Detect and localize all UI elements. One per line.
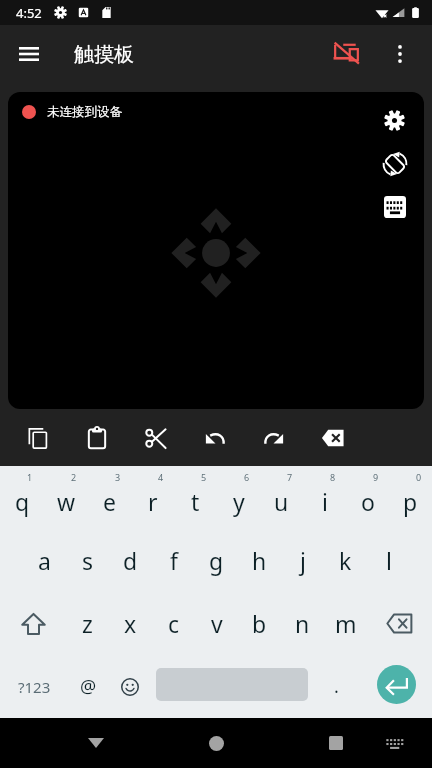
staticText: z — [82, 608, 93, 639]
button[interactable]: Cut — [126, 409, 185, 466]
staticText: c — [168, 608, 180, 639]
button[interactable]: Space — [152, 655, 312, 718]
button[interactable]: 3 — [88, 466, 131, 529]
button[interactable]: Show keyboard — [373, 185, 416, 228]
button[interactable]: n — [281, 592, 324, 655]
staticText: 9 — [373, 471, 379, 483]
staticText: 3 — [115, 471, 121, 483]
staticText: 1 — [27, 471, 33, 483]
button[interactable]: @ — [68, 655, 108, 718]
staticText: a — [38, 545, 51, 576]
staticText: 4:52 — [16, 4, 42, 22]
staticText: 触摸板 — [74, 42, 134, 67]
staticText: t — [191, 486, 200, 517]
staticText: 0 — [416, 471, 422, 483]
staticText: 2 — [71, 471, 77, 483]
staticText: r — [148, 486, 158, 517]
button[interactable]: Rotate screen — [373, 142, 416, 185]
staticText: ?123 — [18, 677, 51, 697]
staticText: v — [211, 608, 223, 639]
button[interactable]: Redo — [244, 409, 303, 466]
button[interactable]: Hide keyboard — [72, 718, 120, 768]
button[interactable]: 0 — [389, 466, 432, 529]
button[interactable]: 4 — [131, 466, 174, 529]
staticText: 7 — [287, 471, 293, 483]
staticText: @ — [80, 674, 97, 699]
staticText: p — [403, 486, 418, 517]
button[interactable]: Switch keyboard — [370, 718, 418, 768]
staticText: i — [322, 486, 328, 517]
button[interactable]: z — [66, 592, 109, 655]
button[interactable]: Copy — [8, 409, 67, 466]
staticText: y — [233, 486, 245, 517]
staticText: d — [123, 545, 138, 576]
button[interactable]: s — [66, 529, 109, 592]
button[interactable]: 7 — [260, 466, 303, 529]
button[interactable]: 6 — [217, 466, 260, 529]
staticText: 4 — [158, 471, 164, 483]
button[interactable]: b — [238, 592, 281, 655]
staticText: j — [300, 545, 306, 576]
button[interactable]: 9 — [346, 466, 389, 529]
staticText: 5 — [201, 471, 207, 483]
button[interactable]: Backspace — [303, 409, 362, 466]
staticText: b — [252, 608, 267, 639]
staticText: s — [82, 545, 94, 576]
staticText: n — [295, 608, 310, 639]
staticText: 6 — [244, 471, 250, 483]
button[interactable]: Settings — [373, 99, 416, 142]
staticText: q — [15, 486, 30, 517]
staticText: u — [274, 486, 289, 517]
button[interactable]: g — [195, 529, 238, 592]
button[interactable]: Emoji — [108, 655, 152, 718]
button[interactable]: Undo — [185, 409, 244, 466]
button[interactable]: k — [324, 529, 367, 592]
button[interactable]: j — [281, 529, 324, 592]
button[interactable]: a — [23, 529, 66, 592]
button[interactable]: ?123 — [0, 655, 68, 718]
button[interactable]: Touchpad — [8, 92, 424, 409]
staticText: . — [334, 674, 339, 699]
staticText: o — [361, 486, 375, 517]
button[interactable]: l — [367, 529, 410, 592]
staticText: g — [209, 545, 224, 576]
button[interactable]: m — [324, 592, 367, 655]
button[interactable]: d — [109, 529, 152, 592]
staticText: 未连接到设备 — [47, 104, 122, 120]
staticText: l — [386, 545, 392, 576]
button[interactable]: Recent apps — [312, 718, 360, 768]
staticText: x — [124, 608, 137, 639]
button[interactable]: x — [109, 592, 152, 655]
staticText: h — [252, 545, 267, 576]
staticText: k — [339, 545, 352, 576]
button[interactable]: Home — [192, 718, 240, 768]
button[interactable]: Paste — [67, 409, 126, 466]
button[interactable]: Navigation menu — [5, 30, 53, 78]
button[interactable]: 5 — [174, 466, 217, 529]
button[interactable]: v — [195, 592, 238, 655]
button[interactable]: Screen cast off — [322, 30, 370, 78]
button[interactable]: Delete — [367, 592, 432, 655]
staticText: m — [335, 608, 357, 639]
staticText: 8 — [330, 471, 336, 483]
button[interactable]: Enter — [360, 655, 432, 718]
button[interactable]: f — [152, 529, 195, 592]
staticText: w — [57, 486, 76, 517]
staticText: e — [103, 486, 116, 517]
button[interactable]: 2 — [44, 466, 88, 529]
button[interactable]: h — [238, 529, 281, 592]
button[interactable]: . — [312, 655, 360, 718]
button[interactable]: More options — [376, 30, 424, 78]
button[interactable]: c — [152, 592, 195, 655]
staticText: f — [170, 545, 178, 576]
button[interactable]: 1 — [0, 466, 44, 529]
button[interactable]: Shift — [0, 592, 66, 655]
button[interactable]: 8 — [303, 466, 346, 529]
